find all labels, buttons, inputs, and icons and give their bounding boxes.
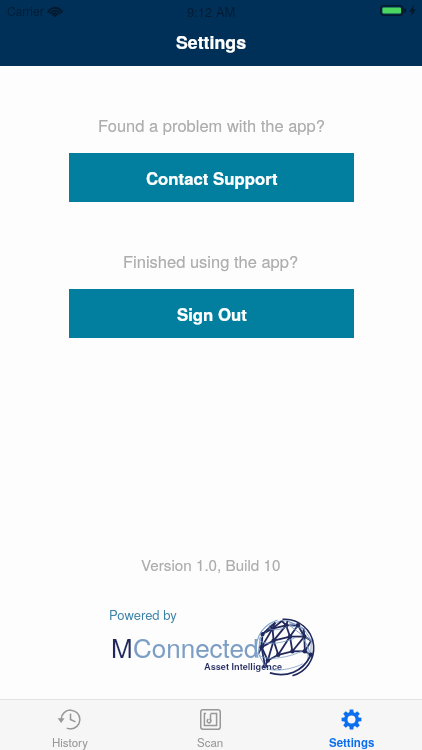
button[interactable]: Sign Out (69, 289, 354, 338)
staticText: Scan (197, 734, 224, 750)
staticText: Settings (329, 734, 375, 750)
staticText: Found a problem with the app? (98, 113, 325, 137)
staticText: Version 1.0, Build 10 (141, 554, 281, 576)
button[interactable]: Contact Support (69, 153, 354, 202)
staticText: Asset Intelligence (204, 660, 283, 673)
staticText: History (52, 734, 88, 750)
staticText: Finished using the app? (123, 249, 299, 273)
button[interactable]: Scan (140, 700, 281, 750)
staticText: 9:12 AM (187, 2, 236, 21)
staticText: Contact Support (146, 166, 278, 190)
other: History (60, 709, 81, 730)
staticText: Carrier (7, 2, 44, 19)
button[interactable]: History (0, 700, 140, 750)
button[interactable]: Settings (281, 700, 422, 750)
staticText: Connected (133, 628, 259, 665)
other: Settings (341, 709, 362, 730)
staticText: Sign Out (177, 302, 247, 326)
staticText: Settings (176, 29, 247, 54)
other: Scan (200, 709, 221, 730)
staticText: Powered by (109, 605, 177, 624)
staticText: M (111, 628, 133, 665)
